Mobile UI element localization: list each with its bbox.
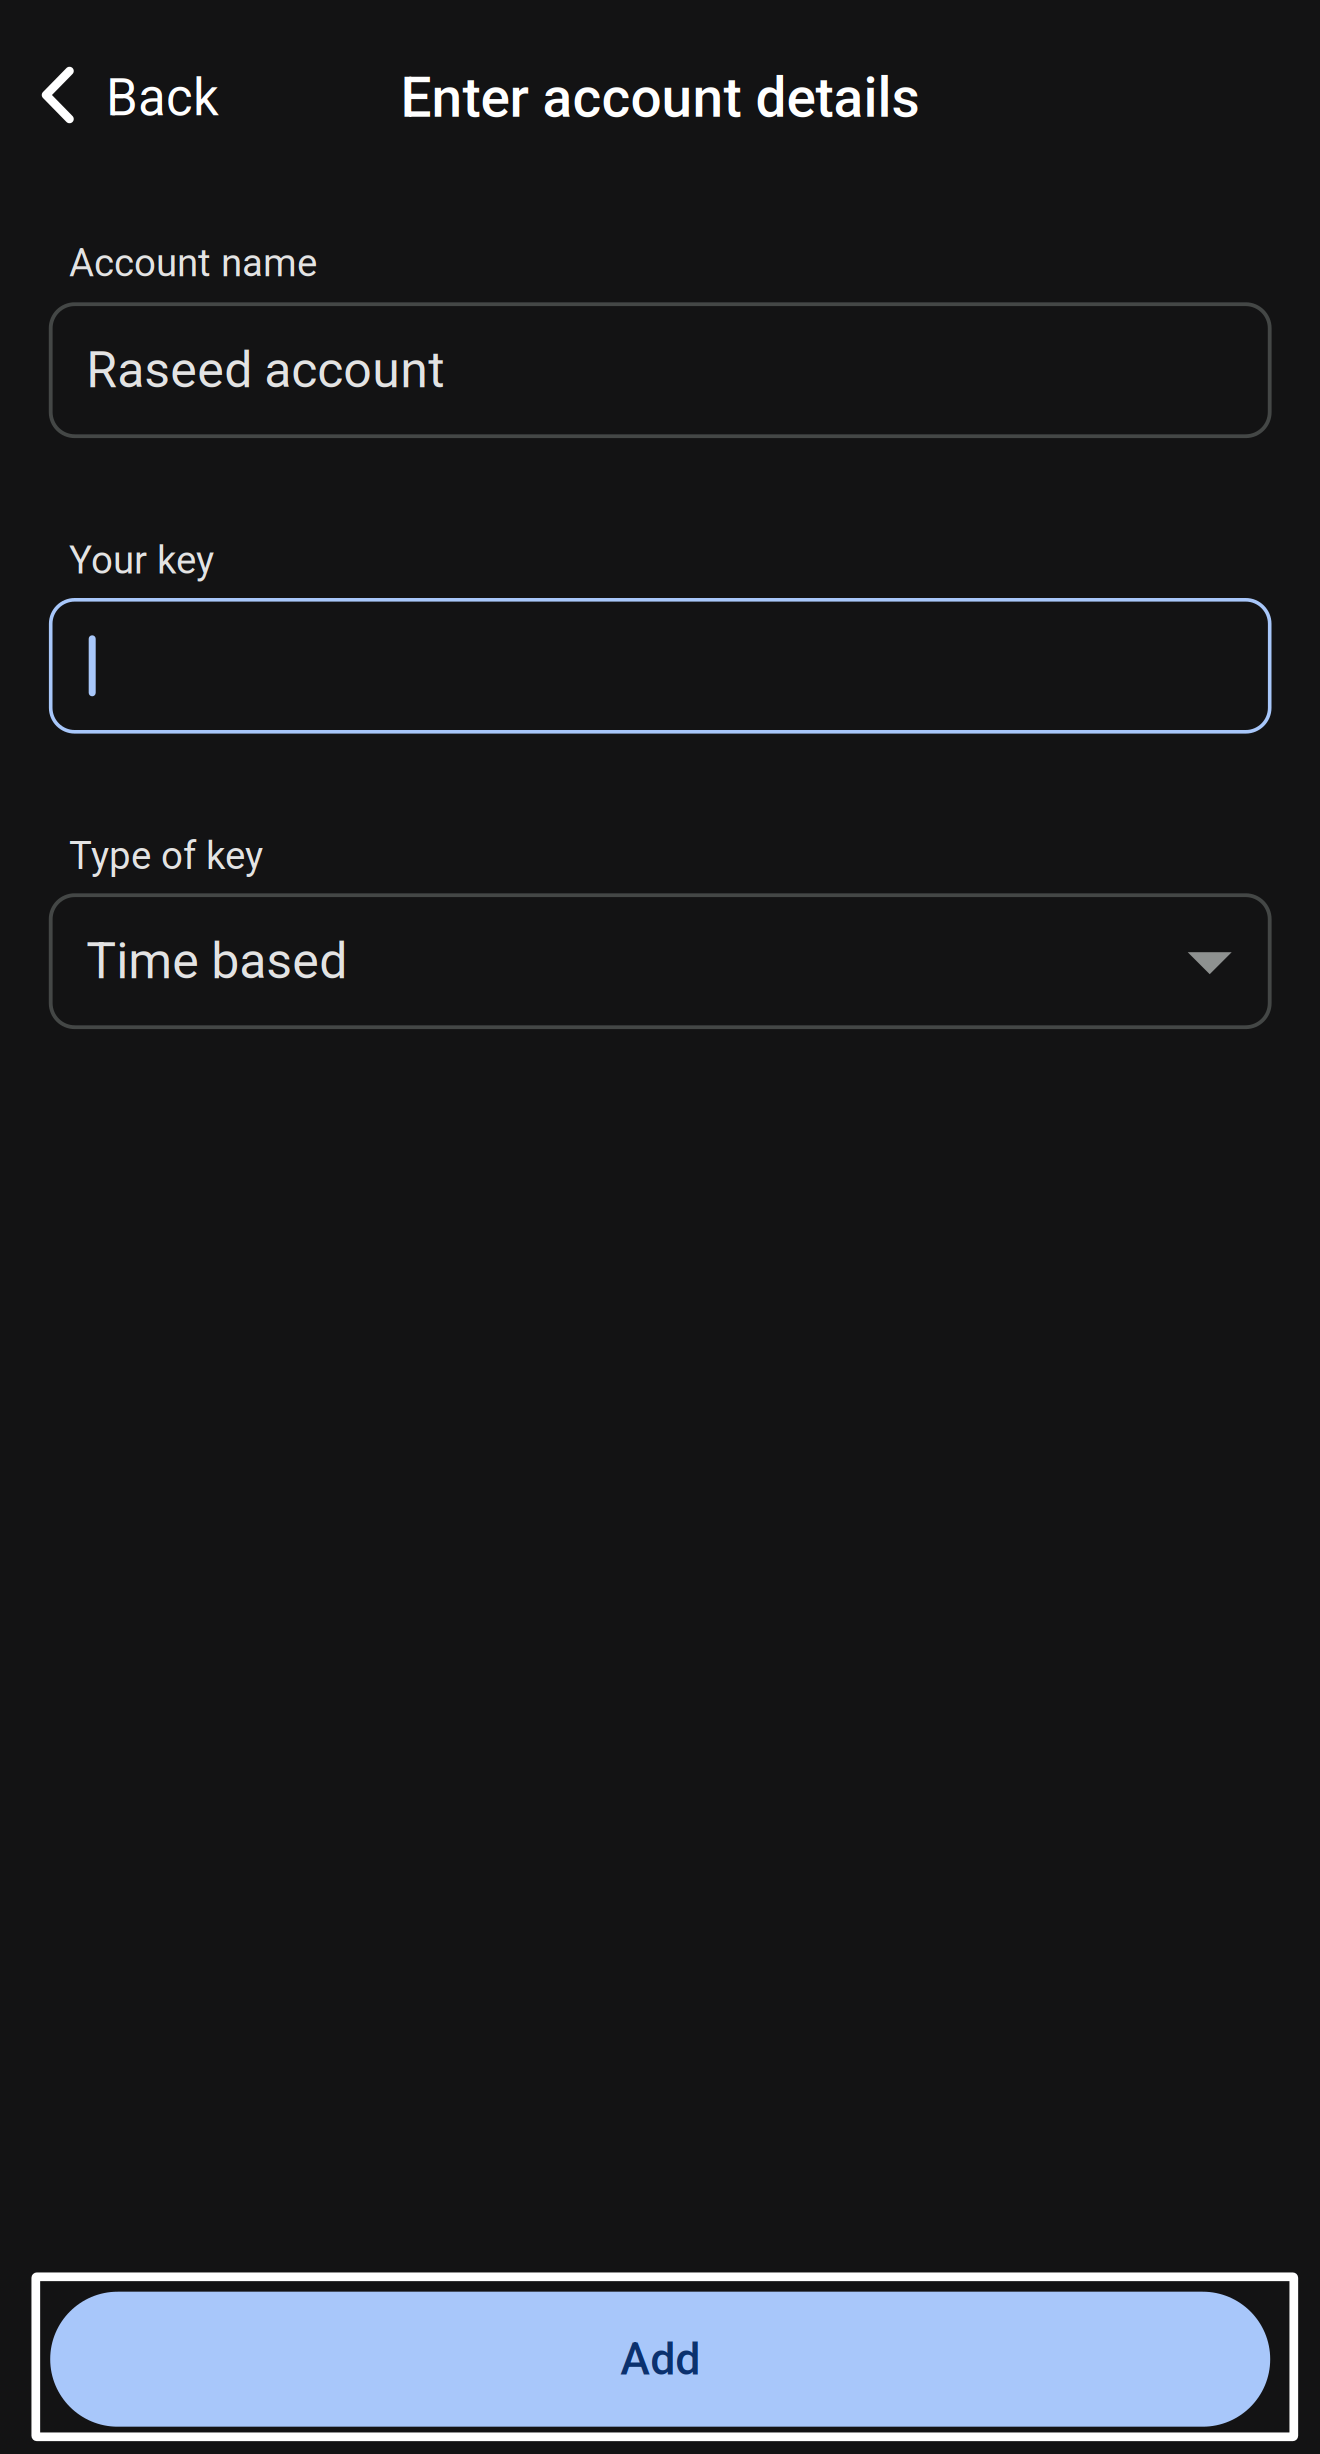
staticText: Type of key — [69, 833, 263, 878]
staticText: Enter account details — [400, 66, 919, 130]
button[interactable]: Back — [0, 0, 248, 190]
staticText: Time based — [86, 932, 347, 990]
staticText: Your key — [69, 538, 214, 583]
staticText: Back — [106, 68, 219, 128]
button[interactable]: Raseed account — [51, 304, 1270, 436]
staticText: Add — [620, 2333, 700, 2385]
staticText: Account name — [69, 241, 317, 286]
button[interactable]: Time based — [51, 895, 1270, 1027]
staticText: Raseed account — [86, 341, 444, 399]
button[interactable] — [51, 600, 1270, 732]
button[interactable]: Add — [31, 2272, 1298, 2441]
